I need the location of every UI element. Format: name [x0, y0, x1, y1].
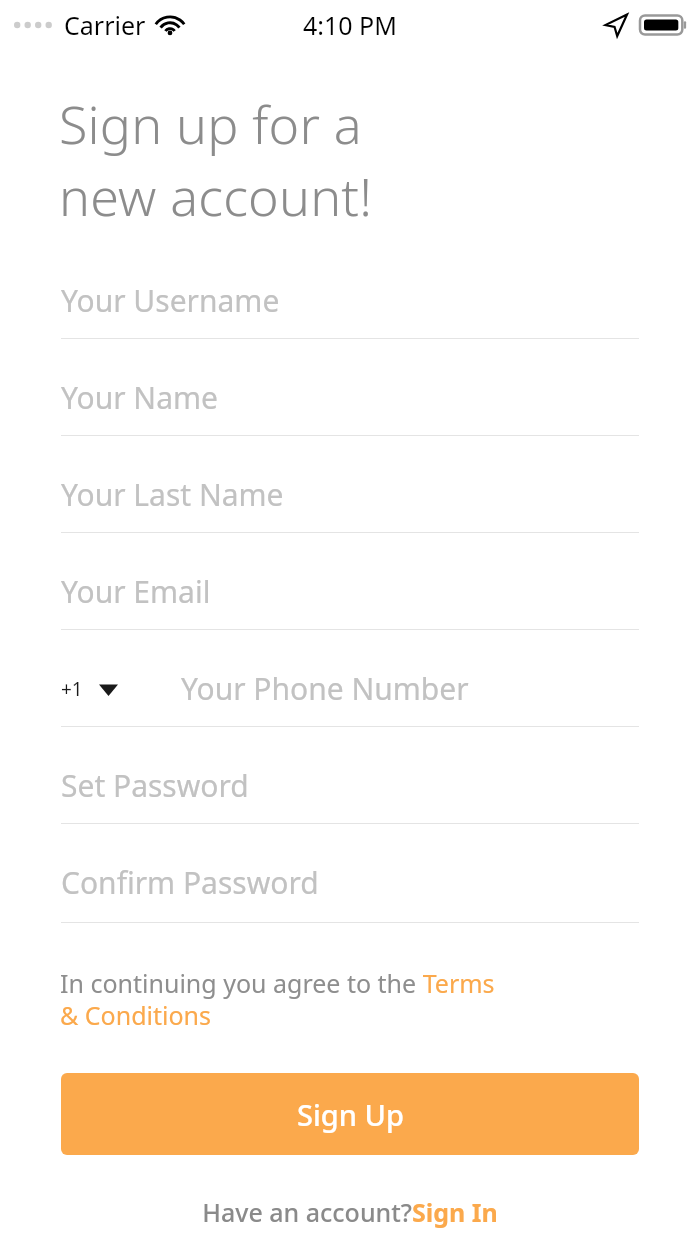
button[interactable]: Have an account?Sign In [0, 1190, 700, 1234]
button[interactable]: Sign Up [61, 1073, 639, 1155]
button[interactable]: Your Email [61, 553, 639, 630]
button[interactable]: Select country code [61, 676, 118, 702]
staticText: Set Password [61, 765, 249, 806]
staticText: Confirm Password [61, 862, 319, 903]
button[interactable]: Your Username [61, 262, 639, 339]
button[interactable]: In continuing you agree to the Terms & C… [60, 966, 640, 1032]
staticText: Sign up for a new account! [59, 88, 373, 232]
button[interactable]: Confirm Password [61, 844, 639, 921]
staticText: Your Username [61, 280, 280, 321]
staticText: Your Name [61, 377, 218, 418]
button[interactable]: Your Phone Number [181, 650, 639, 727]
staticText: Your Email [61, 571, 211, 612]
staticText: Have an account?Sign In [202, 1195, 498, 1229]
staticText: 4:10 PM [303, 8, 397, 42]
staticText: +1 [61, 676, 83, 702]
button[interactable]: Your Last Name [61, 456, 639, 533]
button[interactable]: Set Password [61, 747, 639, 824]
staticText: Your Phone Number [181, 668, 469, 709]
staticText: Carrier [64, 8, 146, 42]
button[interactable]: Your Name [61, 359, 639, 436]
staticText: Your Last Name [61, 474, 284, 515]
staticText: Sign Up [297, 1095, 404, 1134]
